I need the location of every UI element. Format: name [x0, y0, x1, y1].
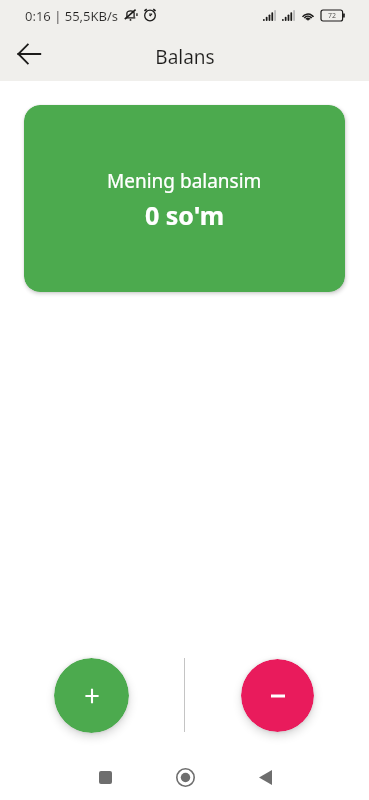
staticText: 0:16 | 55,5KB/s	[25, 7, 119, 25]
button[interactable]: Recents	[83, 755, 127, 799]
staticText: Mening balansim	[107, 168, 262, 194]
staticText: 72	[328, 11, 337, 21]
staticText: Balans	[155, 44, 215, 70]
button[interactable]: Add	[54, 658, 129, 733]
staticText: 0 so'm	[145, 198, 225, 232]
button[interactable]: Back	[243, 755, 287, 799]
button[interactable]: Mening balansim	[24, 105, 345, 292]
button[interactable]: Back	[9, 34, 49, 74]
button[interactable]: Subtract	[241, 659, 314, 732]
button[interactable]: Home	[163, 755, 207, 799]
